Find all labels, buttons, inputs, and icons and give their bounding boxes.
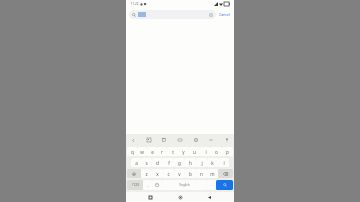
button[interactable]: q bbox=[127, 147, 137, 156]
staticText: f bbox=[168, 160, 170, 166]
staticText: q bbox=[131, 149, 134, 155]
button[interactable]: ?123 bbox=[127, 180, 143, 190]
button[interactable]: d bbox=[152, 158, 163, 167]
staticText: English bbox=[179, 183, 190, 187]
staticText: j bbox=[201, 160, 203, 166]
staticText: , bbox=[147, 182, 149, 188]
button[interactable]: GIF bbox=[176, 136, 184, 144]
button[interactable]: u bbox=[189, 147, 200, 156]
button[interactable]: c bbox=[163, 169, 174, 178]
staticText: l bbox=[223, 160, 225, 166]
staticText: . bbox=[211, 182, 213, 188]
button[interactable]: Stickers bbox=[145, 136, 153, 144]
staticText: ?123 bbox=[132, 183, 139, 187]
staticText: z bbox=[145, 171, 148, 177]
staticText: g bbox=[178, 160, 181, 166]
button[interactable]: Clipboard bbox=[160, 136, 168, 144]
button[interactable]: x bbox=[152, 169, 163, 178]
button[interactable]: Settings bbox=[192, 136, 200, 144]
button[interactable]: p bbox=[222, 147, 233, 156]
staticText: e bbox=[151, 149, 154, 155]
staticText: c bbox=[167, 171, 170, 177]
button[interactable]: s bbox=[141, 158, 152, 167]
staticText: x bbox=[156, 171, 159, 177]
button[interactable]: b bbox=[185, 169, 196, 178]
button[interactable]: f bbox=[163, 158, 174, 167]
button[interactable]: i bbox=[200, 147, 211, 156]
button[interactable]: z bbox=[141, 169, 152, 178]
staticText: r bbox=[161, 149, 163, 155]
button[interactable]: m bbox=[207, 169, 218, 178]
button[interactable]: r bbox=[157, 147, 167, 156]
button[interactable]: Backspace bbox=[218, 169, 233, 178]
button[interactable]: n bbox=[196, 169, 207, 178]
button[interactable]: Emoji bbox=[152, 180, 162, 190]
button[interactable]: Recent apps bbox=[146, 193, 155, 202]
staticText: y bbox=[182, 149, 185, 155]
staticText: k bbox=[211, 160, 214, 166]
button[interactable]: h bbox=[185, 158, 196, 167]
staticText: m bbox=[210, 171, 215, 177]
staticText: d bbox=[156, 160, 159, 166]
staticText: u bbox=[193, 149, 196, 155]
button[interactable]: Clear search bbox=[129, 10, 216, 19]
button[interactable]: l bbox=[218, 158, 229, 167]
staticText: o bbox=[215, 149, 218, 155]
button[interactable]: o bbox=[211, 147, 222, 156]
staticText: v bbox=[178, 171, 181, 177]
button[interactable]: Voice input bbox=[223, 136, 231, 144]
staticText: Cancel bbox=[219, 12, 230, 17]
button[interactable]: y bbox=[178, 147, 189, 156]
button[interactable]: k bbox=[207, 158, 218, 167]
button[interactable]: w bbox=[137, 147, 147, 156]
staticText: i bbox=[205, 149, 207, 155]
button[interactable]: More options bbox=[207, 136, 215, 144]
button[interactable]: t bbox=[167, 147, 178, 156]
button[interactable]: a bbox=[131, 158, 141, 167]
button[interactable]: Shift bbox=[127, 169, 141, 178]
button[interactable]: English bbox=[162, 180, 207, 190]
button[interactable]: Cancel bbox=[218, 10, 231, 19]
button[interactable]: Clear search bbox=[208, 12, 213, 17]
staticText: s bbox=[145, 160, 148, 166]
staticText: t bbox=[172, 149, 174, 155]
button[interactable]: Search bbox=[216, 180, 233, 190]
button[interactable]: e bbox=[147, 147, 157, 156]
staticText: n bbox=[200, 171, 203, 177]
button[interactable]: Home bbox=[176, 193, 185, 202]
staticText: b bbox=[189, 171, 192, 177]
button[interactable]: v bbox=[174, 169, 185, 178]
button[interactable]: g bbox=[174, 158, 185, 167]
staticText: p bbox=[226, 149, 229, 155]
button[interactable]: j bbox=[196, 158, 207, 167]
staticText: h bbox=[189, 160, 192, 166]
staticText: a bbox=[135, 160, 138, 166]
staticText: 11:22 bbox=[130, 2, 139, 6]
button[interactable]: Back bbox=[205, 193, 214, 202]
button[interactable]: Expand toolbar bbox=[129, 136, 137, 144]
staticText: w bbox=[140, 149, 144, 155]
button[interactable]: , bbox=[143, 180, 152, 190]
